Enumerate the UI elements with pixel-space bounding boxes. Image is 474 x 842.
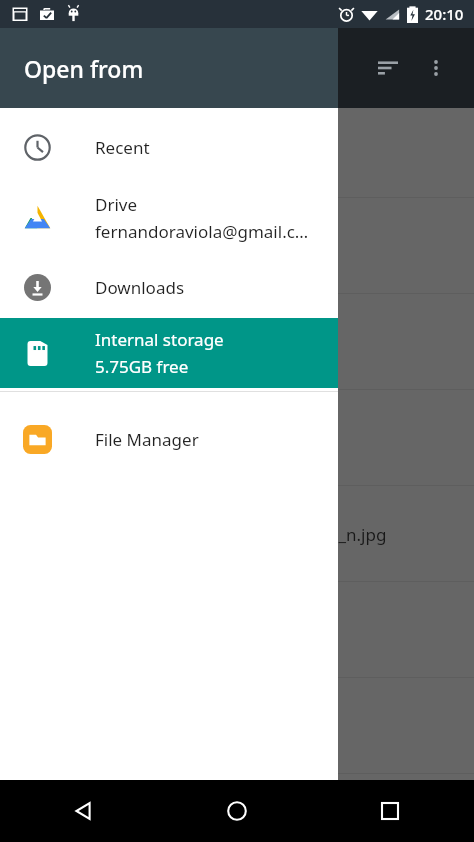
button[interactable]: Sort xyxy=(364,44,412,92)
staticText: 20:10 xyxy=(425,4,464,24)
staticText: 5.75GB free xyxy=(95,355,189,378)
staticText: Internal storage xyxy=(95,328,224,351)
button[interactable] xyxy=(0,108,474,198)
button[interactable] xyxy=(0,198,474,294)
staticText: XXXX48560_n.jpg xyxy=(250,523,387,546)
button[interactable]: Drive xyxy=(0,180,338,256)
button[interactable]: XXXX48560_n.jpg xyxy=(0,486,474,582)
button[interactable]: Back xyxy=(58,785,110,837)
staticText: Open from xyxy=(24,53,144,84)
button[interactable]: Recent xyxy=(0,114,338,180)
staticText: Recent xyxy=(95,136,150,159)
button[interactable] xyxy=(0,294,474,390)
button[interactable]: File Manager xyxy=(0,392,338,486)
button[interactable] xyxy=(0,582,474,678)
staticText: File Manager xyxy=(95,428,199,451)
staticText: Downloads xyxy=(95,276,185,299)
button[interactable] xyxy=(0,678,474,774)
button[interactable]: Downloads xyxy=(0,256,338,318)
button[interactable]: XXXX-D3 xyxy=(0,390,474,486)
staticText: fernandoraviola@gmail.c… xyxy=(95,220,309,243)
button[interactable]: Recents xyxy=(364,785,416,837)
button[interactable]: More options xyxy=(412,44,460,92)
staticText: Drive xyxy=(95,193,138,216)
button[interactable]: Home xyxy=(211,785,263,837)
button[interactable]: Internal storage xyxy=(0,318,338,388)
